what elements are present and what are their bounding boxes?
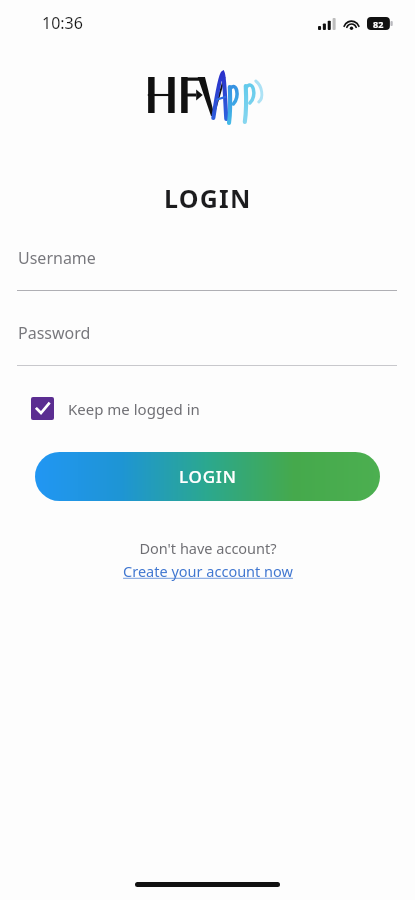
staticText: Keep me logged in <box>68 399 200 419</box>
button[interactable]: Keep me logged in <box>31 393 200 424</box>
staticText: LOGIN <box>164 181 252 215</box>
button[interactable]: LOGIN <box>35 452 380 501</box>
staticText: Username <box>18 247 96 269</box>
button[interactable]: Username input field <box>0 247 415 291</box>
staticText: 10:36 <box>42 12 83 34</box>
staticText: Create your account now <box>123 561 293 581</box>
button[interactable]: Password input field <box>0 322 415 366</box>
staticText: 82 <box>373 18 384 30</box>
staticText: Don't have account? <box>139 538 277 558</box>
button[interactable]: Create your account now <box>123 561 293 581</box>
staticText: LOGIN <box>179 465 237 488</box>
staticText: Password <box>18 322 91 344</box>
